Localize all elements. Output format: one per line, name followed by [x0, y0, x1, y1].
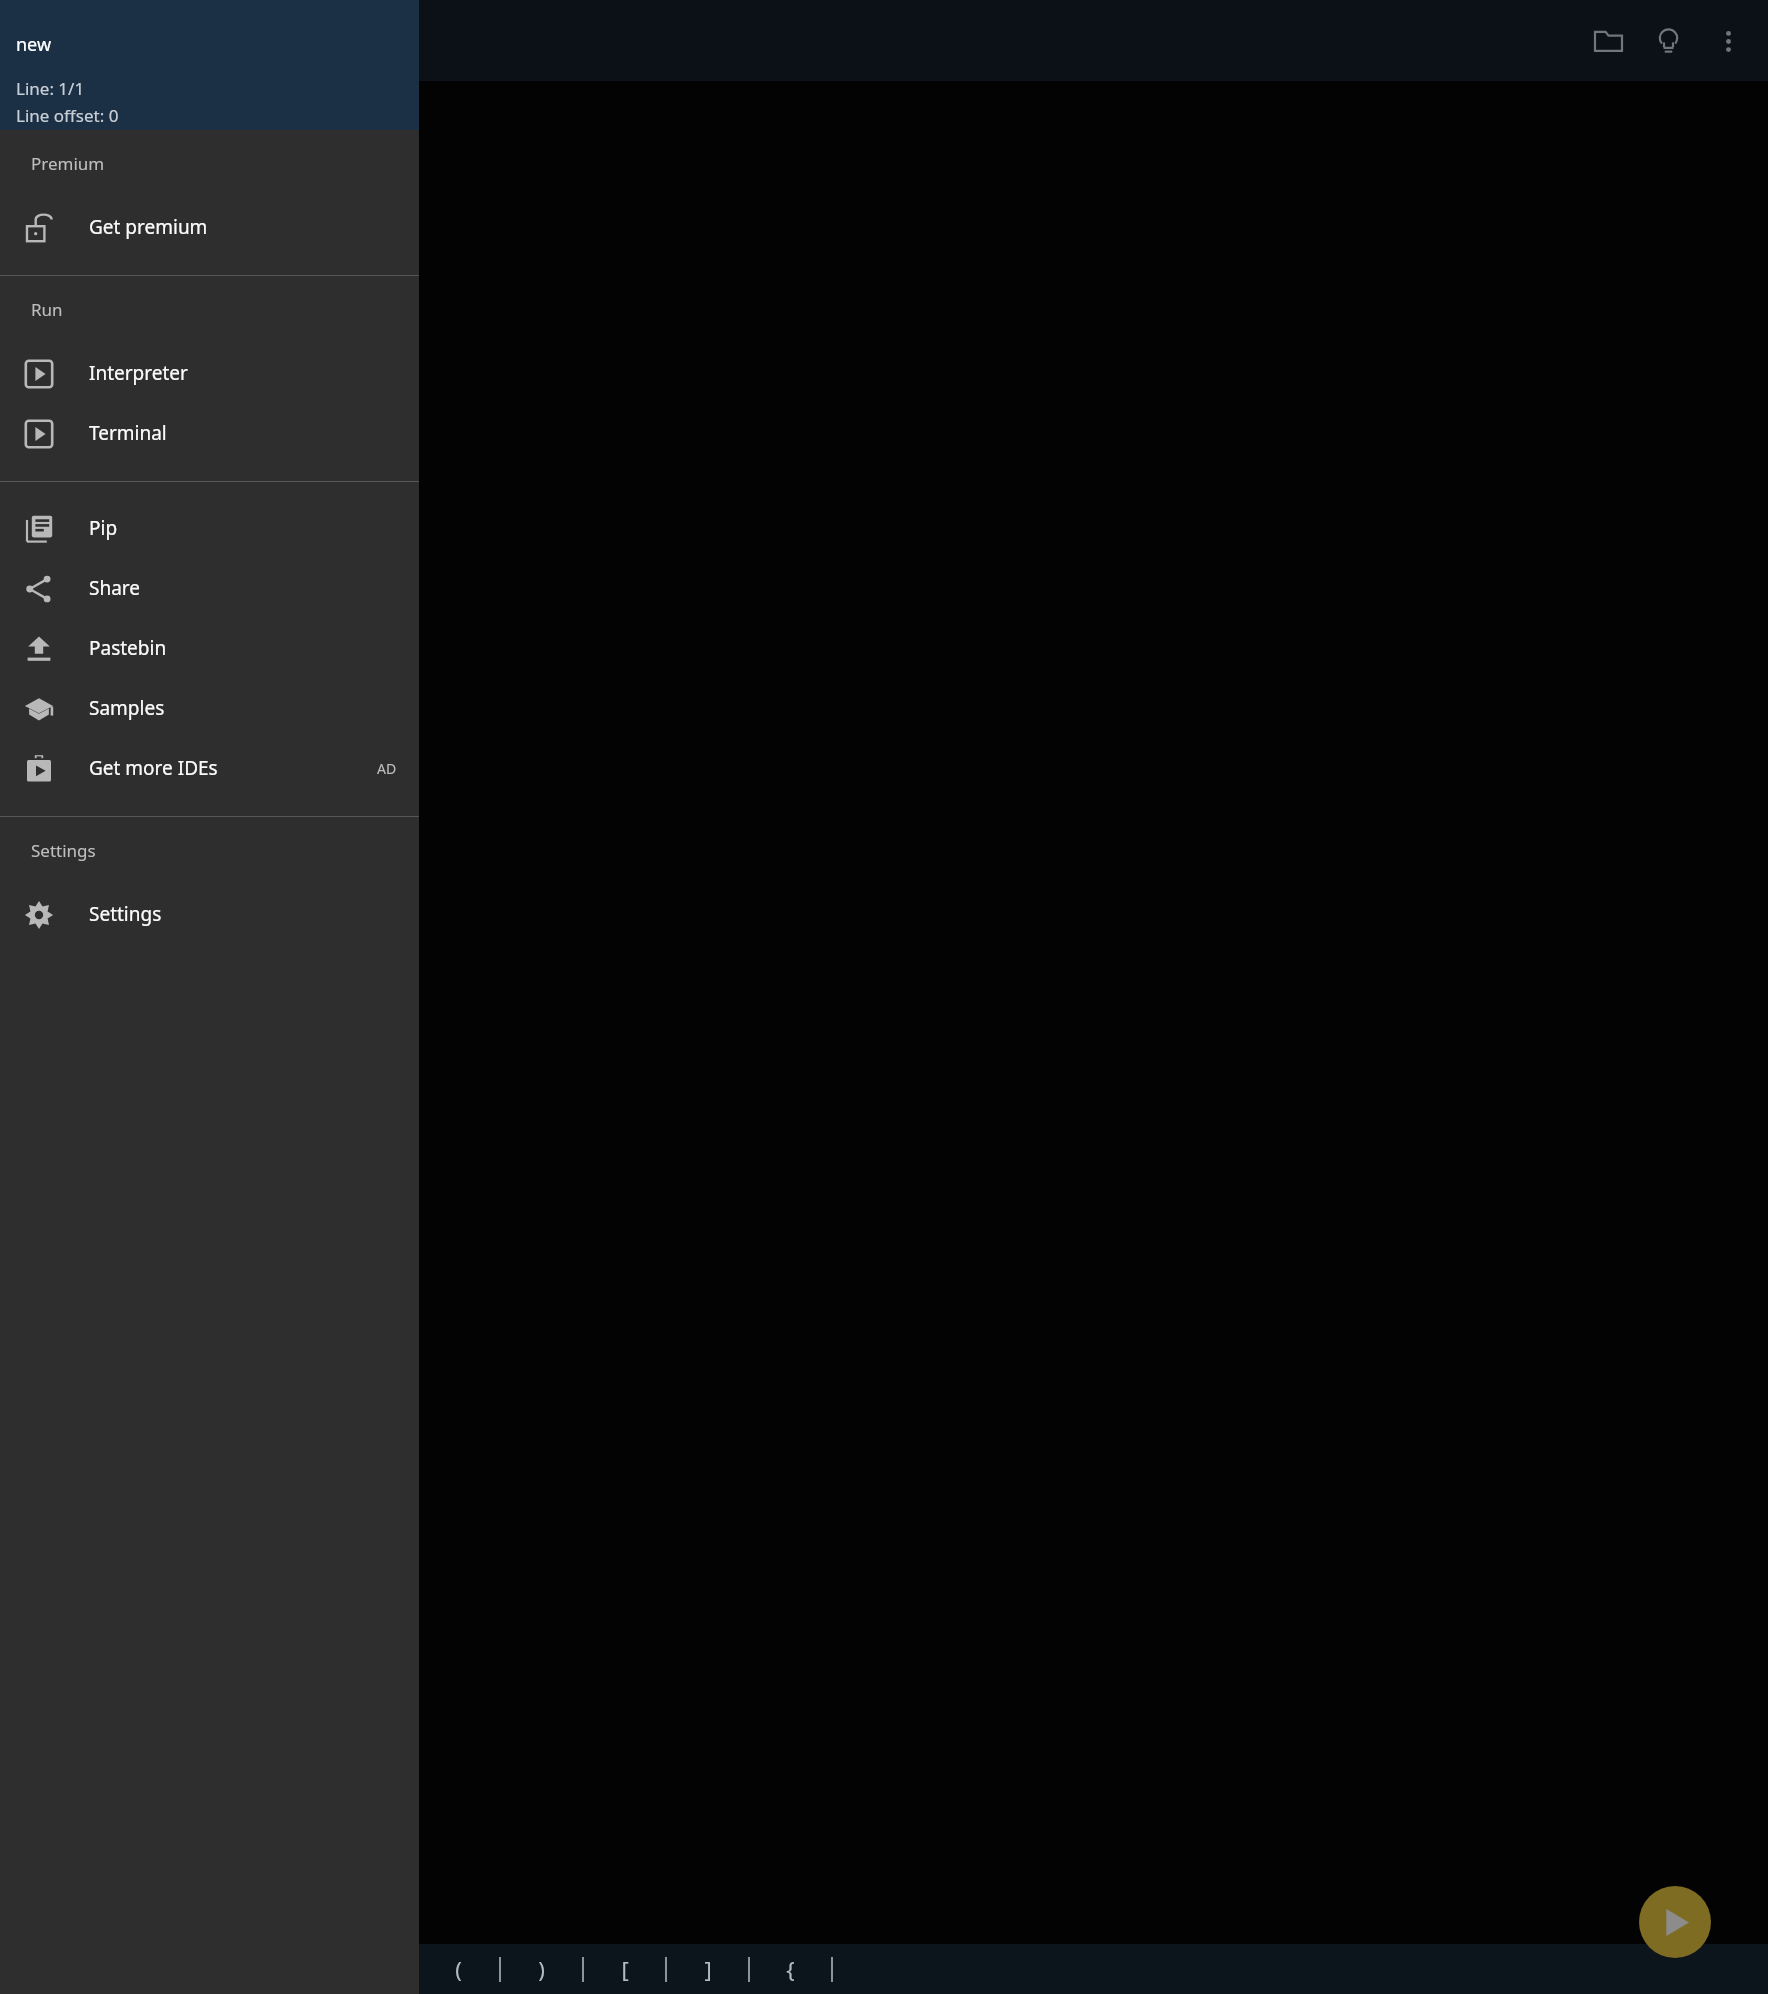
button[interactable]: More options	[1698, 11, 1758, 71]
staticText: Terminal	[89, 420, 167, 446]
staticText: Get more IDEs	[89, 755, 218, 781]
button[interactable]: Open file	[1578, 11, 1638, 71]
button[interactable]: Pip	[0, 498, 419, 558]
button[interactable]: (	[418, 1944, 499, 1994]
staticText: Samples	[89, 695, 165, 721]
staticText: [	[621, 1954, 629, 1984]
staticText: Interpreter	[89, 360, 188, 386]
button[interactable]: Get premium	[0, 197, 419, 257]
button[interactable]: Settings	[0, 884, 419, 944]
button[interactable]: )	[501, 1944, 582, 1994]
button[interactable]: ]	[667, 1944, 748, 1994]
staticText: Get premium	[89, 214, 208, 240]
button[interactable]: Terminal	[0, 403, 419, 463]
button[interactable]: Run	[1639, 1886, 1711, 1958]
button[interactable]: {	[750, 1944, 831, 1994]
button[interactable]: Share	[0, 558, 419, 618]
staticText: {	[786, 1954, 795, 1984]
staticText: Pastebin	[89, 635, 167, 661]
button[interactable]: [	[584, 1944, 665, 1994]
staticText: )	[538, 1954, 545, 1984]
staticText: Settings	[31, 839, 96, 862]
staticText: ]	[704, 1954, 712, 1984]
button[interactable]: Interpreter	[0, 343, 419, 403]
button[interactable]: Hints	[1638, 11, 1698, 71]
staticText: Premium	[31, 152, 105, 175]
staticText: new	[16, 32, 52, 57]
staticText: (	[455, 1954, 462, 1984]
button[interactable]: Samples	[0, 678, 419, 738]
button[interactable]: Get more IDEs	[0, 738, 419, 798]
button[interactable]: Pastebin	[0, 618, 419, 678]
staticText: Share	[89, 575, 141, 601]
staticText: Line: 1/1	[16, 77, 85, 100]
staticText: Pip	[89, 515, 118, 541]
staticText: AD	[377, 759, 397, 778]
staticText: Settings	[89, 901, 162, 927]
staticText: Line offset: 0	[16, 104, 119, 127]
staticText: Run	[31, 298, 63, 321]
